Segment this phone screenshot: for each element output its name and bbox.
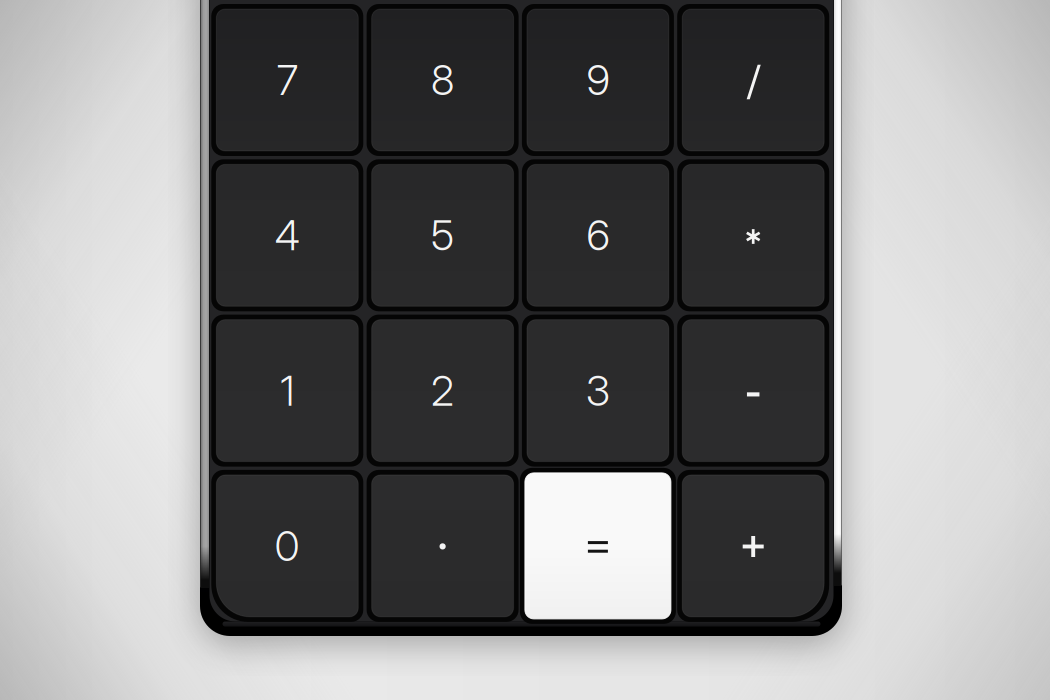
button[interactable]: Add: [677, 470, 829, 622]
button[interactable]: 6: [522, 159, 674, 311]
staticText: 2: [431, 366, 454, 416]
staticText: 9: [586, 55, 609, 105]
button[interactable]: 5: [367, 159, 519, 311]
staticText: 7: [277, 55, 298, 105]
button[interactable]: 9: [522, 4, 674, 156]
button[interactable]: 8: [367, 4, 519, 156]
button[interactable]: Divide: [677, 4, 829, 156]
staticText: 1: [280, 366, 294, 416]
button[interactable]: Subtract: [677, 315, 829, 467]
staticText: 3: [586, 366, 610, 416]
button[interactable]: 0: [211, 470, 363, 622]
button[interactable]: Equals: [520, 468, 676, 624]
staticText: 6: [586, 210, 609, 260]
staticText: 4: [275, 210, 300, 260]
button[interactable]: 3: [522, 315, 674, 467]
staticText: 8: [431, 55, 454, 105]
button[interactable]: 7: [211, 4, 363, 156]
staticText: 0: [275, 521, 300, 571]
button[interactable]: 2: [367, 315, 519, 467]
button[interactable]: Decimal point: [367, 470, 519, 622]
button[interactable]: Multiply: [677, 159, 829, 311]
button[interactable]: 1: [211, 315, 363, 467]
staticText: 5: [431, 210, 454, 260]
button[interactable]: 4: [211, 159, 363, 311]
